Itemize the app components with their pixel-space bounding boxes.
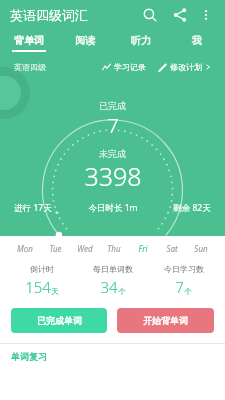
staticText: 开始背单词 [143, 315, 188, 326]
staticText: 背单词 [14, 34, 44, 47]
button[interactable]: Sat [157, 236, 186, 260]
staticText: 154 [25, 277, 51, 297]
staticText: 英语四级词汇 [10, 7, 88, 23]
button[interactable]: Mon [10, 236, 40, 260]
staticText: Thu [107, 243, 121, 254]
button[interactable]: 阅读 [57, 30, 113, 56]
staticText: 34 [100, 277, 118, 297]
button[interactable]: Tue [40, 236, 70, 260]
staticText: Sun [194, 243, 208, 254]
staticText: 已完成 [99, 100, 126, 111]
staticText: 个 [184, 287, 192, 296]
button[interactable]: 听力 [113, 30, 169, 56]
staticText: 剩余 82天 [173, 202, 211, 214]
staticText: 倒计时 [30, 264, 54, 274]
staticText: 进行 17天 [14, 202, 52, 214]
staticText: 天 [51, 287, 59, 296]
staticText: 今日时长 1m [88, 202, 138, 214]
staticText: Sat [166, 243, 178, 254]
staticText: Tue [49, 243, 62, 254]
staticText: 学习记录 [114, 62, 146, 72]
button[interactable]: 今日学习数 [148, 264, 219, 297]
staticText: 英语四级 [14, 62, 46, 72]
staticText: 修改计划 [170, 62, 202, 72]
button[interactable]: Share [167, 2, 193, 28]
staticText: 7 [107, 112, 119, 139]
button[interactable]: 已完成单词 [11, 308, 107, 333]
staticText: 听力 [131, 34, 151, 47]
button[interactable]: Search [137, 2, 163, 28]
button[interactable]: 我 [169, 30, 225, 56]
staticText: 阅读 [75, 34, 95, 47]
staticText: 每日单词数 [93, 264, 133, 274]
staticText: Wed [77, 243, 93, 254]
staticText: Fri [138, 243, 148, 254]
button[interactable]: More options [195, 4, 217, 26]
staticText: 已完成单词 [37, 315, 82, 326]
staticText: 今日学习数 [164, 264, 204, 274]
button[interactable]: 背单词 [0, 30, 57, 56]
staticText: 我 [192, 34, 202, 47]
button[interactable]: Sun [186, 236, 215, 260]
staticText: Mon [17, 243, 33, 254]
button[interactable]: 学习记录 [102, 62, 146, 72]
staticText: 3398 [84, 159, 142, 193]
staticText: 7 [175, 277, 184, 297]
button[interactable]: 开始背单词 [117, 308, 214, 333]
button[interactable]: Fri [128, 236, 157, 260]
staticText: 未完成 [99, 148, 126, 159]
button[interactable]: Thu [99, 236, 128, 260]
button[interactable]: 每日单词数 [77, 264, 148, 297]
button[interactable]: Wed [70, 236, 99, 260]
button[interactable]: 修改计划 [158, 62, 211, 72]
staticText: 个 [118, 287, 126, 296]
button[interactable]: 倒计时 [6, 264, 77, 297]
staticText: 单词复习 [11, 351, 47, 362]
